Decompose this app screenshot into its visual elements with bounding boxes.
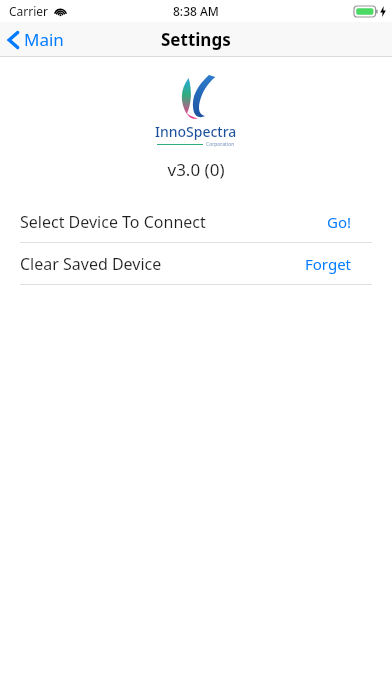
- staticText: Select Device To Connect: [20, 211, 206, 233]
- staticText: Clear Saved Device: [20, 253, 162, 275]
- staticText: Go!: [327, 212, 352, 232]
- staticText: v3.0 (0): [0, 158, 392, 181]
- staticText: Settings: [161, 28, 231, 51]
- staticText: Main: [24, 28, 64, 51]
- staticText: InnoSpectra: [155, 122, 237, 141]
- staticText: Corporation: [206, 141, 235, 148]
- staticText: Forget: [305, 254, 352, 274]
- button[interactable]: Main: [0, 24, 74, 55]
- staticText: Carrier: [9, 3, 49, 19]
- button[interactable]: Select Device To Connect: [0, 201, 392, 242]
- button[interactable]: Clear Saved Device: [0, 243, 392, 284]
- staticText: 8:38 AM: [173, 3, 219, 19]
